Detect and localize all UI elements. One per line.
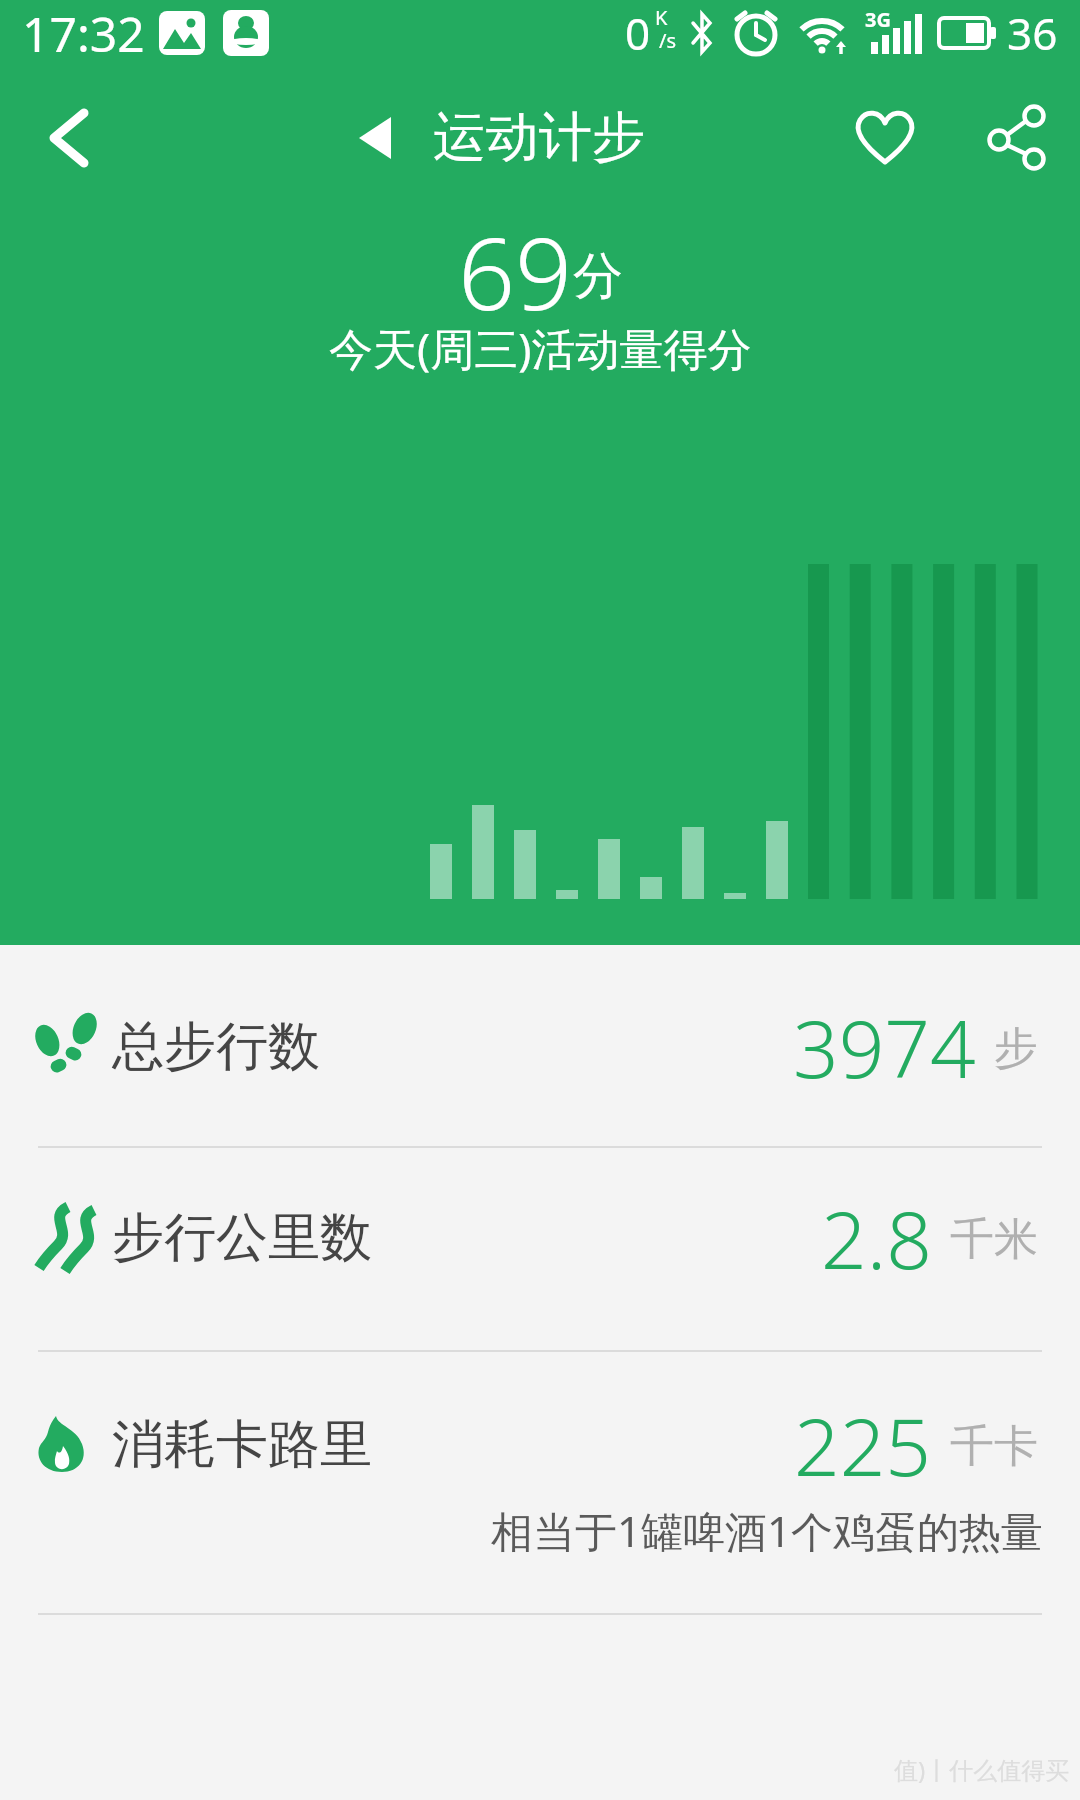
staticText: 步行公里数 xyxy=(112,1205,372,1271)
staticText: 225 xyxy=(794,1390,932,1499)
staticText: /s xyxy=(659,27,677,54)
staticText: 值)丨什么值得买 xyxy=(894,1753,1070,1786)
staticText: 分 xyxy=(573,245,623,308)
staticText: 相当于1罐啤酒1个鸡蛋的热量 xyxy=(491,1502,1044,1559)
staticText: 3G xyxy=(865,6,891,33)
button[interactable] xyxy=(28,98,108,178)
staticText: 千卡 xyxy=(950,1419,1038,1474)
button[interactable] xyxy=(984,105,1050,171)
staticText: 总步行数 xyxy=(112,1014,320,1080)
button[interactable]: 步行公里数 xyxy=(0,1148,1080,1352)
staticText: K xyxy=(655,4,668,31)
staticText: 运动计步 xyxy=(433,104,645,171)
button[interactable]: 总步行数 xyxy=(0,945,1080,1148)
staticText: 17:32 xyxy=(22,1,145,66)
staticText: 步 xyxy=(994,1021,1038,1076)
staticText: 0 xyxy=(625,3,651,63)
staticText: 消耗卡路里 xyxy=(112,1412,372,1478)
button[interactable] xyxy=(850,103,920,173)
button[interactable]: 消耗卡路里 xyxy=(0,1352,1080,1615)
staticText: 千米 xyxy=(950,1212,1038,1267)
staticText: 2.8 xyxy=(821,1183,932,1292)
staticText: 36 xyxy=(1007,3,1058,63)
staticText: 3974 xyxy=(793,992,976,1101)
staticText: 69 xyxy=(458,203,573,321)
staticText: 今天(周三)活动量得分 xyxy=(329,318,752,378)
